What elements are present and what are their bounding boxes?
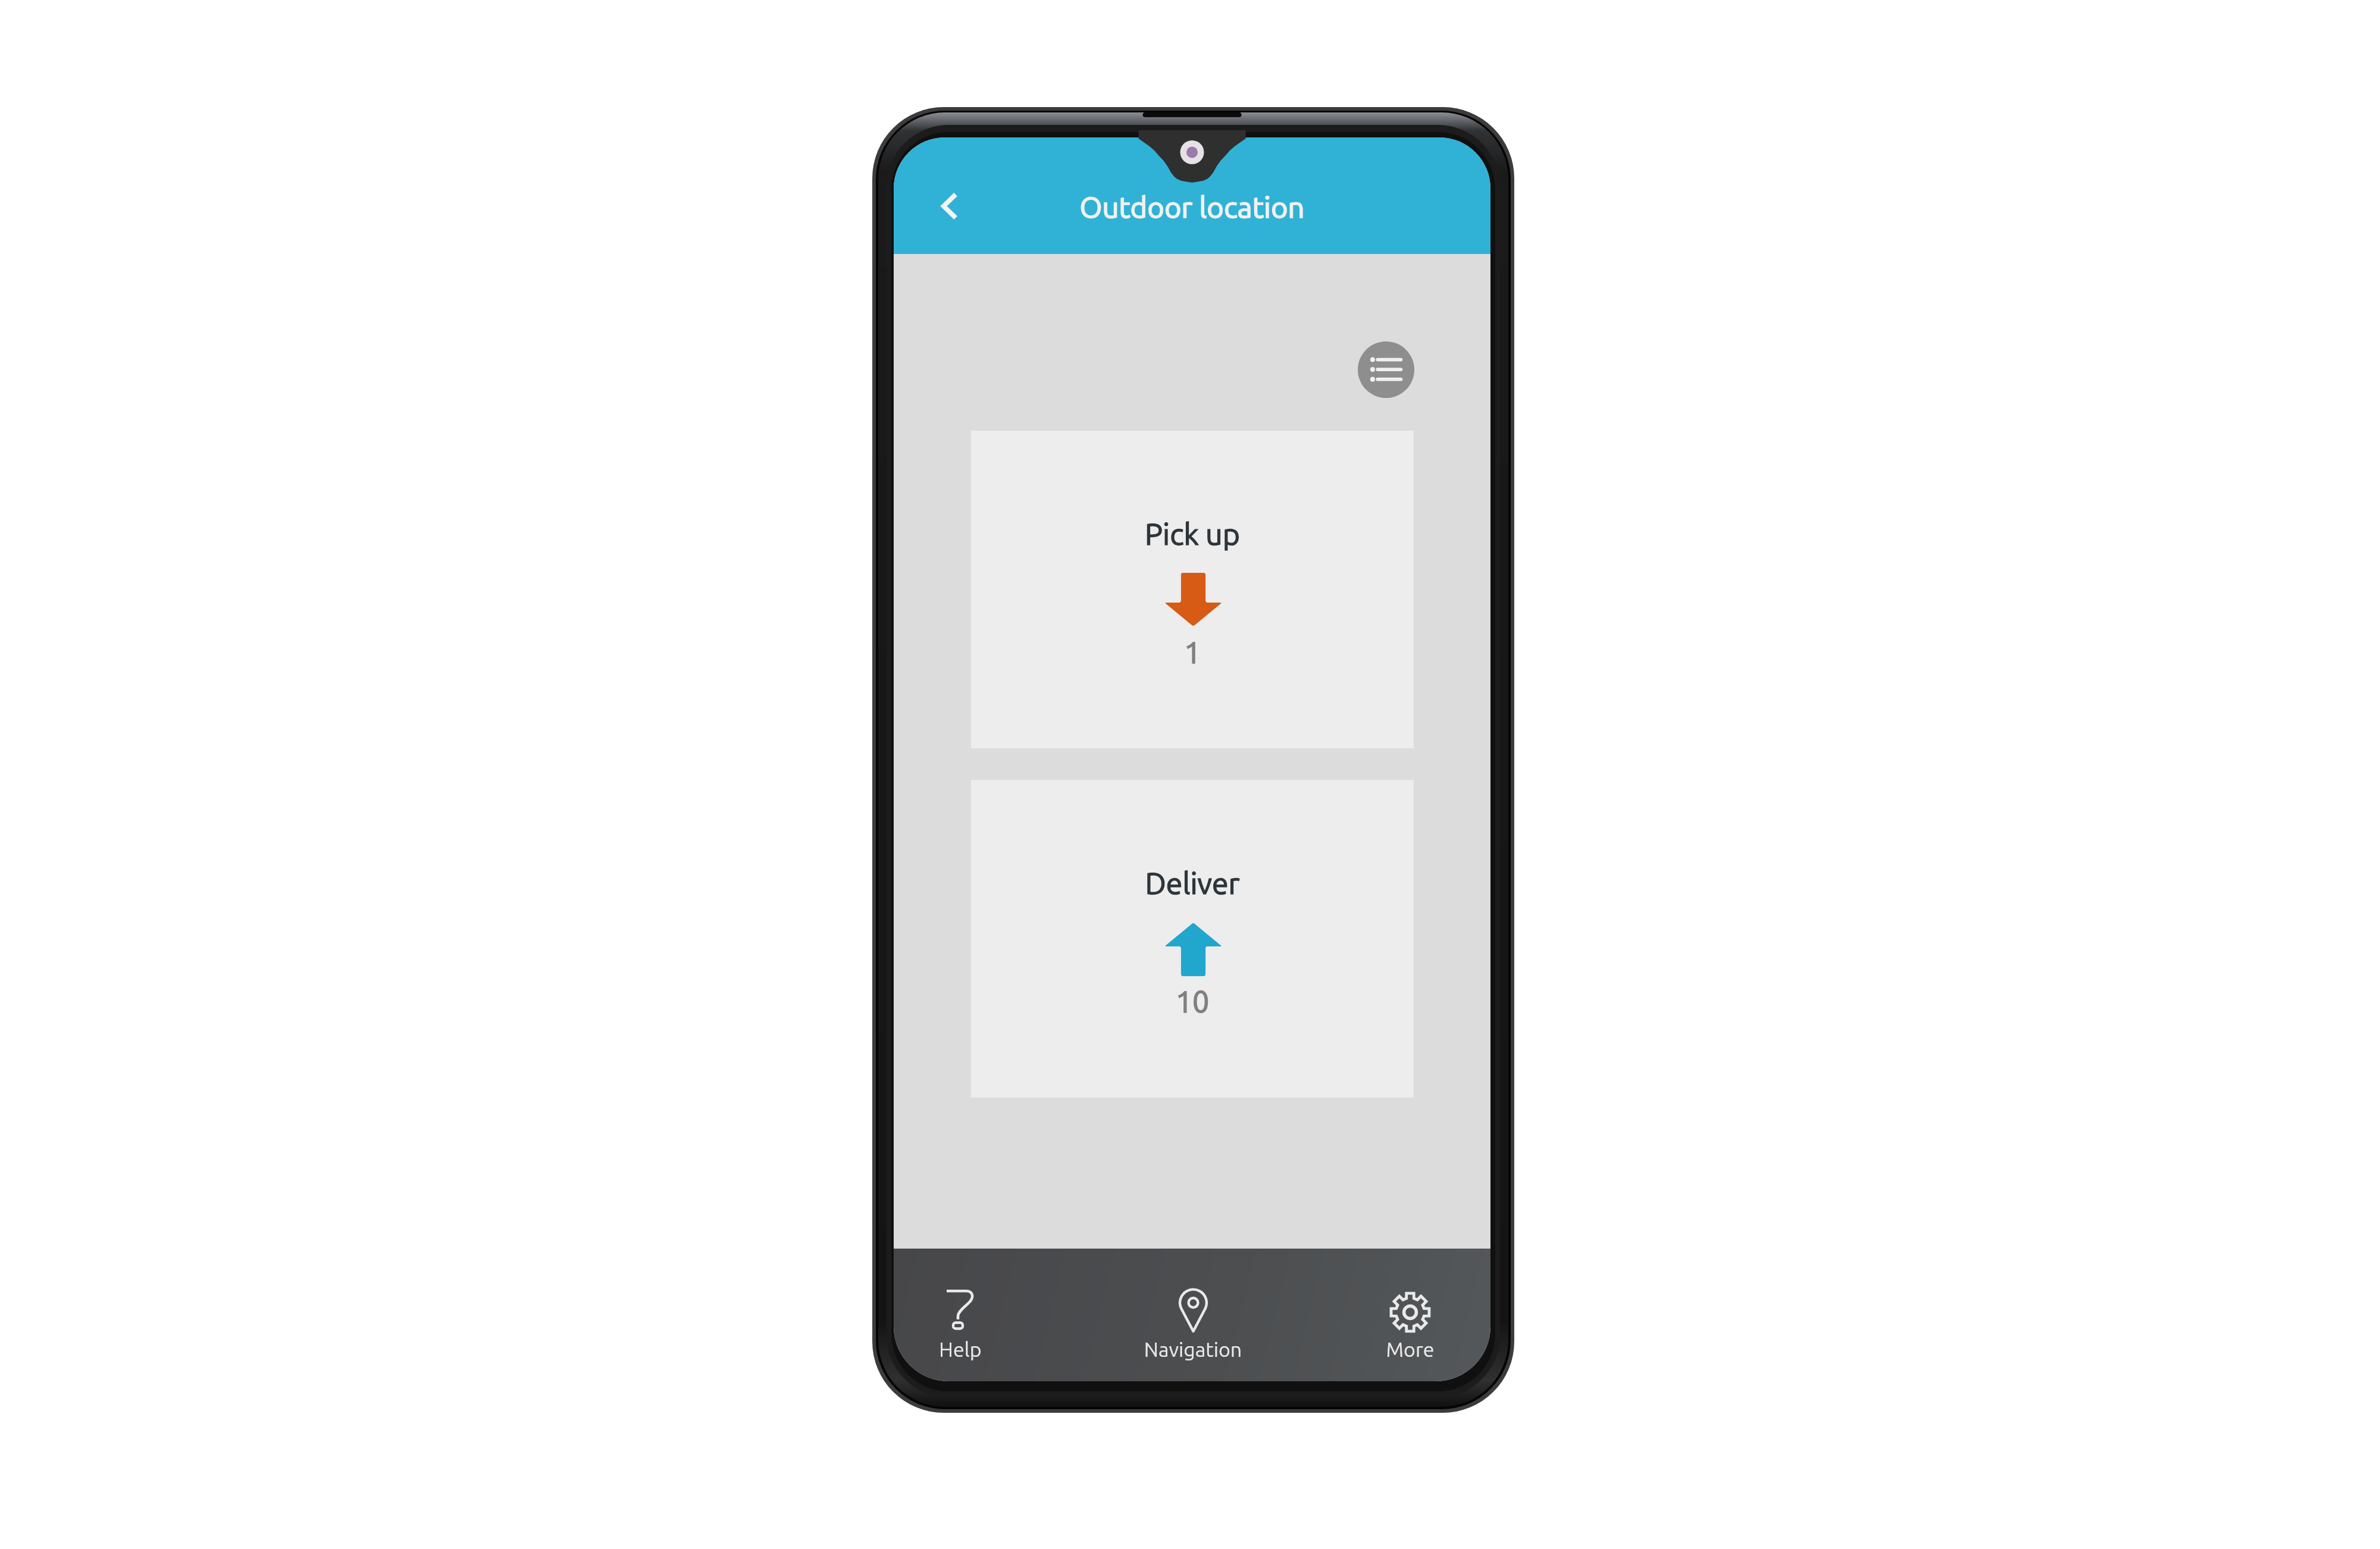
staticText: Navigation bbox=[1104, 1338, 1282, 1360]
staticText: 10 bbox=[971, 984, 1414, 1018]
staticText: Help bbox=[894, 1338, 1050, 1360]
staticText: More bbox=[1321, 1338, 1490, 1360]
staticText: Deliver bbox=[971, 866, 1414, 899]
button[interactable]: Deliver bbox=[971, 780, 1414, 1098]
button[interactable]: Navigation bbox=[1104, 1249, 1282, 1381]
staticText: Outdoor location bbox=[894, 190, 1490, 223]
button[interactable]: Pick up bbox=[971, 431, 1414, 748]
staticText: Pick up bbox=[971, 517, 1414, 550]
staticText: 1 bbox=[971, 635, 1414, 669]
button[interactable]: Show list bbox=[1358, 341, 1414, 398]
button[interactable]: Help bbox=[894, 1249, 1050, 1381]
button[interactable]: Back bbox=[928, 179, 983, 234]
button[interactable]: More bbox=[1321, 1249, 1490, 1381]
